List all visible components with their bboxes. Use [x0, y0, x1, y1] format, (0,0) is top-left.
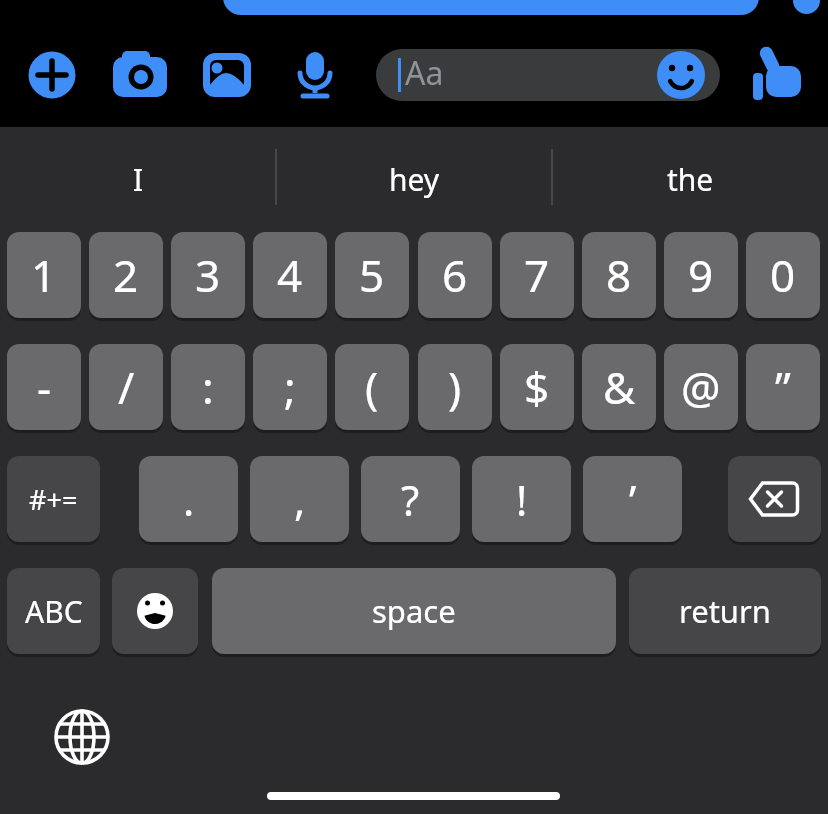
staticText: 1	[31, 245, 57, 305]
staticText: Aa	[405, 51, 444, 95]
staticText: -	[37, 357, 52, 417]
staticText: ;	[284, 357, 296, 417]
staticText: space	[372, 590, 456, 632]
button[interactable]	[110, 46, 172, 102]
staticText: !	[516, 471, 528, 528]
button[interactable]: -	[7, 344, 81, 430]
button[interactable]: ABC	[7, 568, 100, 654]
button[interactable]: 5	[335, 232, 409, 318]
button[interactable]: 1	[7, 232, 81, 318]
staticText: ?	[401, 471, 420, 528]
staticText: ABC	[25, 591, 83, 632]
staticText: 8	[606, 245, 632, 305]
button[interactable]: 0	[746, 232, 820, 318]
button[interactable]: @	[664, 344, 738, 430]
button[interactable]: hey	[276, 127, 552, 232]
button[interactable]	[27, 50, 77, 100]
button[interactable]: 7	[500, 232, 574, 318]
staticText: #+=	[29, 481, 78, 518]
staticText: :	[202, 357, 214, 417]
button[interactable]: 3	[171, 232, 245, 318]
button[interactable]	[50, 705, 114, 769]
button[interactable]: (	[335, 344, 409, 430]
staticText: )	[448, 357, 462, 417]
button[interactable]: ,	[250, 456, 349, 542]
staticText: 9	[688, 245, 714, 305]
button[interactable]: I	[0, 127, 276, 232]
staticText: 0	[770, 245, 796, 305]
staticText: 3	[195, 245, 221, 305]
button[interactable]: 9	[664, 232, 738, 318]
staticText: return	[679, 590, 771, 632]
staticText: /	[118, 357, 135, 417]
staticText: hey	[389, 159, 440, 200]
button[interactable]: /	[89, 344, 163, 430]
staticText: I	[133, 159, 144, 200]
staticText: (	[365, 357, 379, 417]
button[interactable]: Aa	[376, 49, 720, 101]
button[interactable]	[112, 568, 198, 654]
button[interactable]: $	[500, 344, 574, 430]
button[interactable]: the	[552, 127, 828, 232]
staticText: @	[681, 357, 721, 417]
staticText: 6	[442, 245, 468, 305]
staticText: .	[183, 471, 195, 528]
button[interactable]: )	[418, 344, 492, 430]
button[interactable]: space	[212, 568, 616, 654]
staticText: $	[524, 357, 550, 417]
button[interactable]: :	[171, 344, 245, 430]
staticText: 5	[359, 245, 385, 305]
staticText: the	[667, 159, 714, 200]
button[interactable]: ?	[361, 456, 460, 542]
button[interactable]: !	[472, 456, 571, 542]
button[interactable]: ”	[746, 344, 820, 430]
button[interactable]	[199, 49, 255, 101]
staticText: 4	[277, 245, 303, 305]
button[interactable]: return	[629, 568, 821, 654]
staticText: &	[603, 357, 636, 417]
button[interactable]: ;	[253, 344, 327, 430]
staticText: ’	[629, 471, 637, 528]
staticText: 2	[113, 245, 139, 305]
staticText: ,	[294, 471, 306, 528]
button[interactable]	[295, 46, 335, 102]
staticText: ”	[775, 357, 791, 417]
button[interactable]: 4	[253, 232, 327, 318]
button[interactable]	[728, 456, 821, 542]
button[interactable]: 6	[418, 232, 492, 318]
button[interactable]	[745, 40, 815, 106]
staticText: 7	[524, 245, 550, 305]
button[interactable]: &	[582, 344, 656, 430]
button[interactable]: 8	[582, 232, 656, 318]
button[interactable]: #+=	[7, 456, 100, 542]
button[interactable]: 2	[89, 232, 163, 318]
button[interactable]: ’	[583, 456, 682, 542]
button[interactable]: .	[139, 456, 238, 542]
